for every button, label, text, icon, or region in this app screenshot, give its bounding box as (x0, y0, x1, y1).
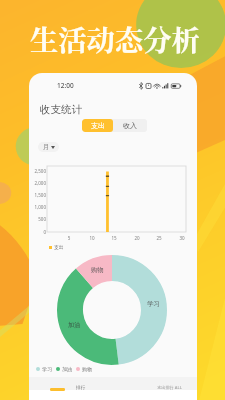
staticText: 5 (63, 235, 75, 241)
staticText: 2,000 (29, 180, 46, 186)
staticText: 支出 (54, 244, 64, 250)
staticText: 支出排行 ALL (157, 385, 182, 391)
staticText: 加油 (68, 321, 81, 329)
staticText: 2,500 (29, 168, 46, 174)
staticText: 30 (176, 235, 188, 241)
button[interactable]: 支出 (82, 119, 113, 132)
staticText: 1,500 (29, 192, 46, 198)
staticText: 购物 (82, 366, 92, 372)
staticText: 10 (86, 235, 98, 241)
staticText: 1,000 (29, 204, 46, 210)
staticText: 支出 (91, 121, 105, 130)
staticText: 500 (29, 216, 46, 222)
staticText: 加油 (62, 366, 72, 372)
staticText: 收支统计 (40, 103, 82, 116)
button[interactable]: 收入 (113, 119, 147, 132)
button[interactable]: 月 (38, 142, 59, 152)
staticText: 25 (153, 235, 165, 241)
staticText: 学习 (147, 300, 160, 308)
staticText: 收入 (123, 121, 137, 130)
staticText: 15 (108, 235, 120, 241)
staticText: 生活动态分析 (30, 18, 200, 59)
staticText: 学习 (42, 366, 52, 372)
staticText: 月 (43, 143, 49, 151)
staticText: 0 (29, 229, 46, 235)
staticText: 12:00 (57, 81, 74, 90)
button[interactable]: 排行 (76, 385, 86, 391)
staticText: 购物 (91, 266, 104, 274)
staticText: 20 (131, 235, 143, 241)
button[interactable]: 总览 (50, 388, 65, 391)
